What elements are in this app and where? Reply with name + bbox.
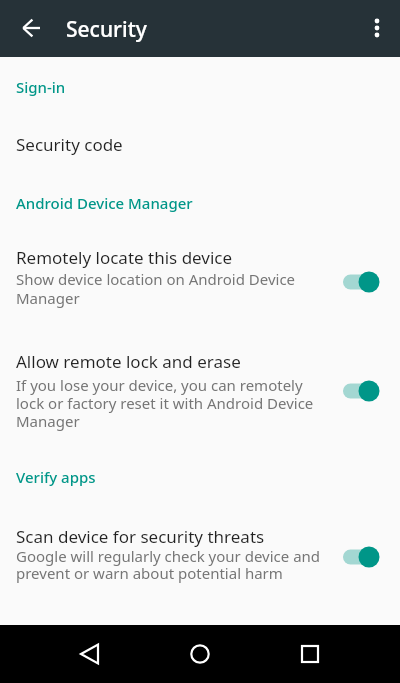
staticText: Google will regularly check your device … xyxy=(16,546,321,584)
button[interactable] xyxy=(294,638,326,670)
staticText: Scan device for security threats xyxy=(16,525,265,548)
staticText: Android Device Manager xyxy=(16,193,193,213)
button[interactable]: Security code xyxy=(0,120,400,170)
button[interactable] xyxy=(74,638,106,670)
staticText: Sign-in xyxy=(16,77,66,97)
button[interactable]: Remotely locate this device xyxy=(0,237,400,322)
staticText: Security xyxy=(66,15,147,44)
staticText: If you lose your device, you can remotel… xyxy=(16,375,314,432)
button[interactable] xyxy=(17,16,43,42)
staticText: Verify apps xyxy=(16,467,96,487)
staticText: Allow remote lock and erase xyxy=(16,350,241,373)
button[interactable]: Allow remote lock and erase xyxy=(0,340,400,440)
button[interactable]: Scan device for security threats xyxy=(0,515,400,590)
button[interactable] xyxy=(366,16,388,42)
staticText: Remotely locate this device xyxy=(16,246,233,269)
staticText: Show device location on Android Device M… xyxy=(16,269,296,308)
staticText: Security code xyxy=(16,133,123,156)
button[interactable] xyxy=(184,638,216,670)
